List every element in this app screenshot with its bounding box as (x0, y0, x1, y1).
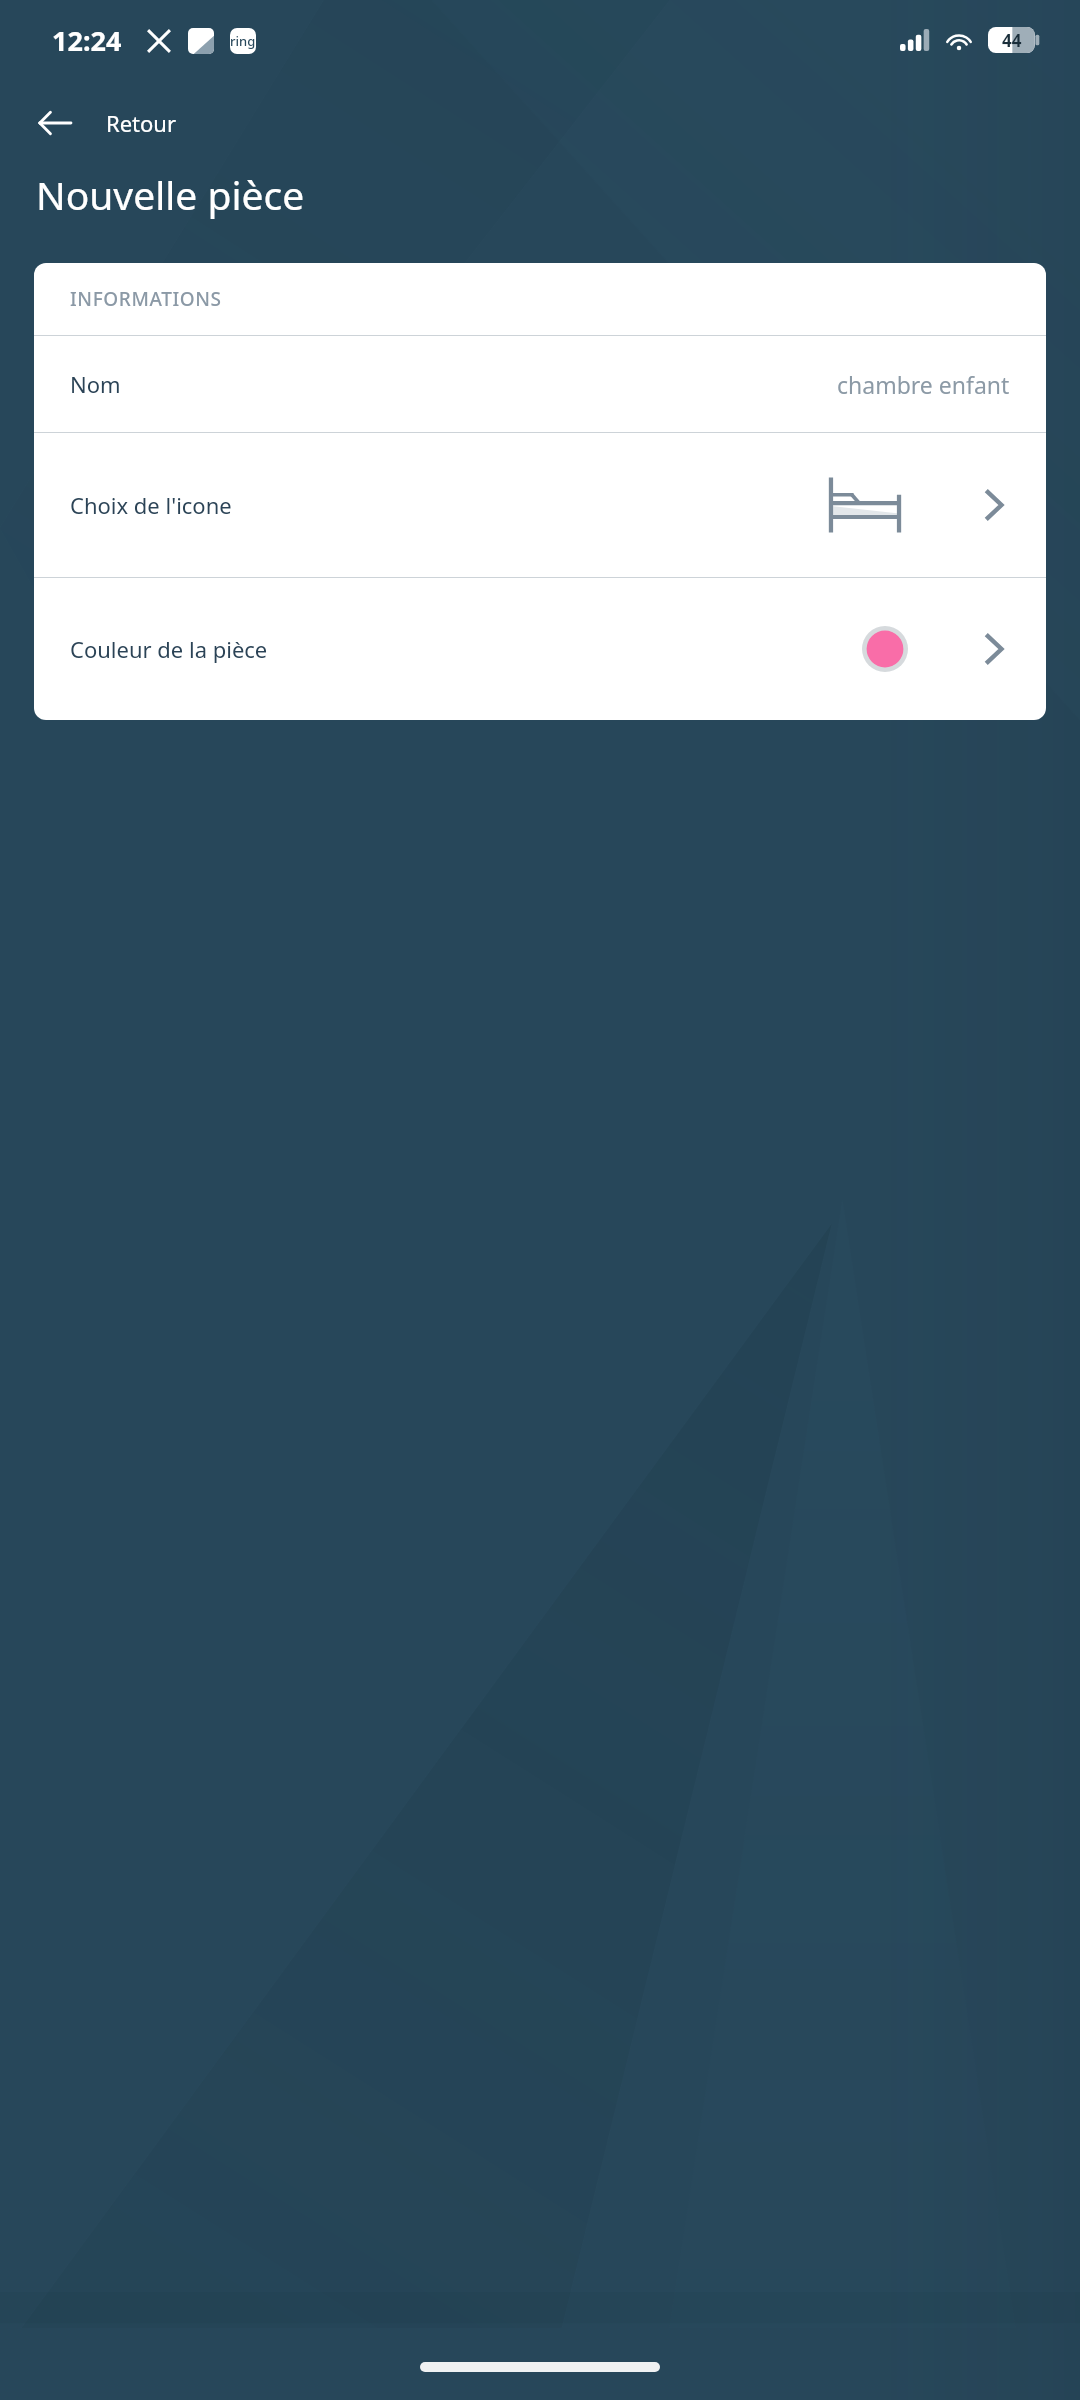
staticText: chambre enfant (837, 369, 1010, 400)
staticText: Choix de l'icone (70, 490, 232, 520)
button[interactable]: Retour (0, 96, 205, 150)
staticText: Retour (106, 108, 177, 138)
staticText: ring (230, 32, 256, 50)
button[interactable]: Choix de l'icone (34, 433, 1046, 577)
other: Ouvrir (972, 483, 1016, 527)
other: Ouvrir (972, 627, 1016, 671)
staticText: Nouvelle pièce (36, 168, 305, 221)
button[interactable]: Nom (34, 336, 1046, 432)
button[interactable]: Couleur de la pièce (34, 578, 1046, 720)
staticText: Nom (70, 369, 121, 399)
staticText: 44 (1002, 29, 1022, 52)
staticText: 12:24 (52, 22, 122, 59)
staticText: Couleur de la pièce (70, 634, 268, 664)
staticText: INFORMATIONS (70, 286, 222, 312)
